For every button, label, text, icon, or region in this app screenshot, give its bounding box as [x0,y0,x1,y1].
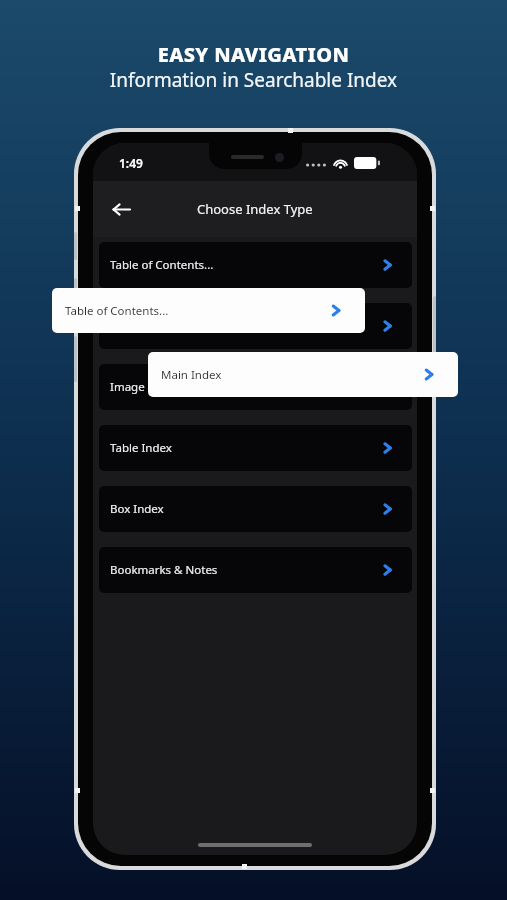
button[interactable] [99,303,412,349]
button[interactable]: Table Index [99,425,412,471]
button[interactable]: Main Index [148,352,458,397]
button[interactable]: Table of Contents... [99,242,412,288]
staticText: Box Index [110,501,164,517]
button[interactable]: Bookmarks & Notes [99,547,412,593]
staticText: Information in Searchable Index [0,67,507,93]
staticText: Image Index [110,379,179,395]
staticText: Table of Contents... [110,257,214,273]
button[interactable]: Box Index [99,486,412,532]
staticText: Bookmarks & Notes [110,562,218,578]
button[interactable]: Back [103,191,139,227]
staticText: Table of Contents... [65,303,169,319]
button[interactable]: Table of Contents... [52,288,365,333]
staticText: Table Index [110,440,172,456]
staticText: Choose Index Type [197,200,313,218]
staticText: Main Index [161,367,222,383]
button[interactable]: Image Index [99,364,412,410]
staticText: 1:49 [119,155,143,171]
staticText: EASY NAVIGATION [0,41,507,68]
